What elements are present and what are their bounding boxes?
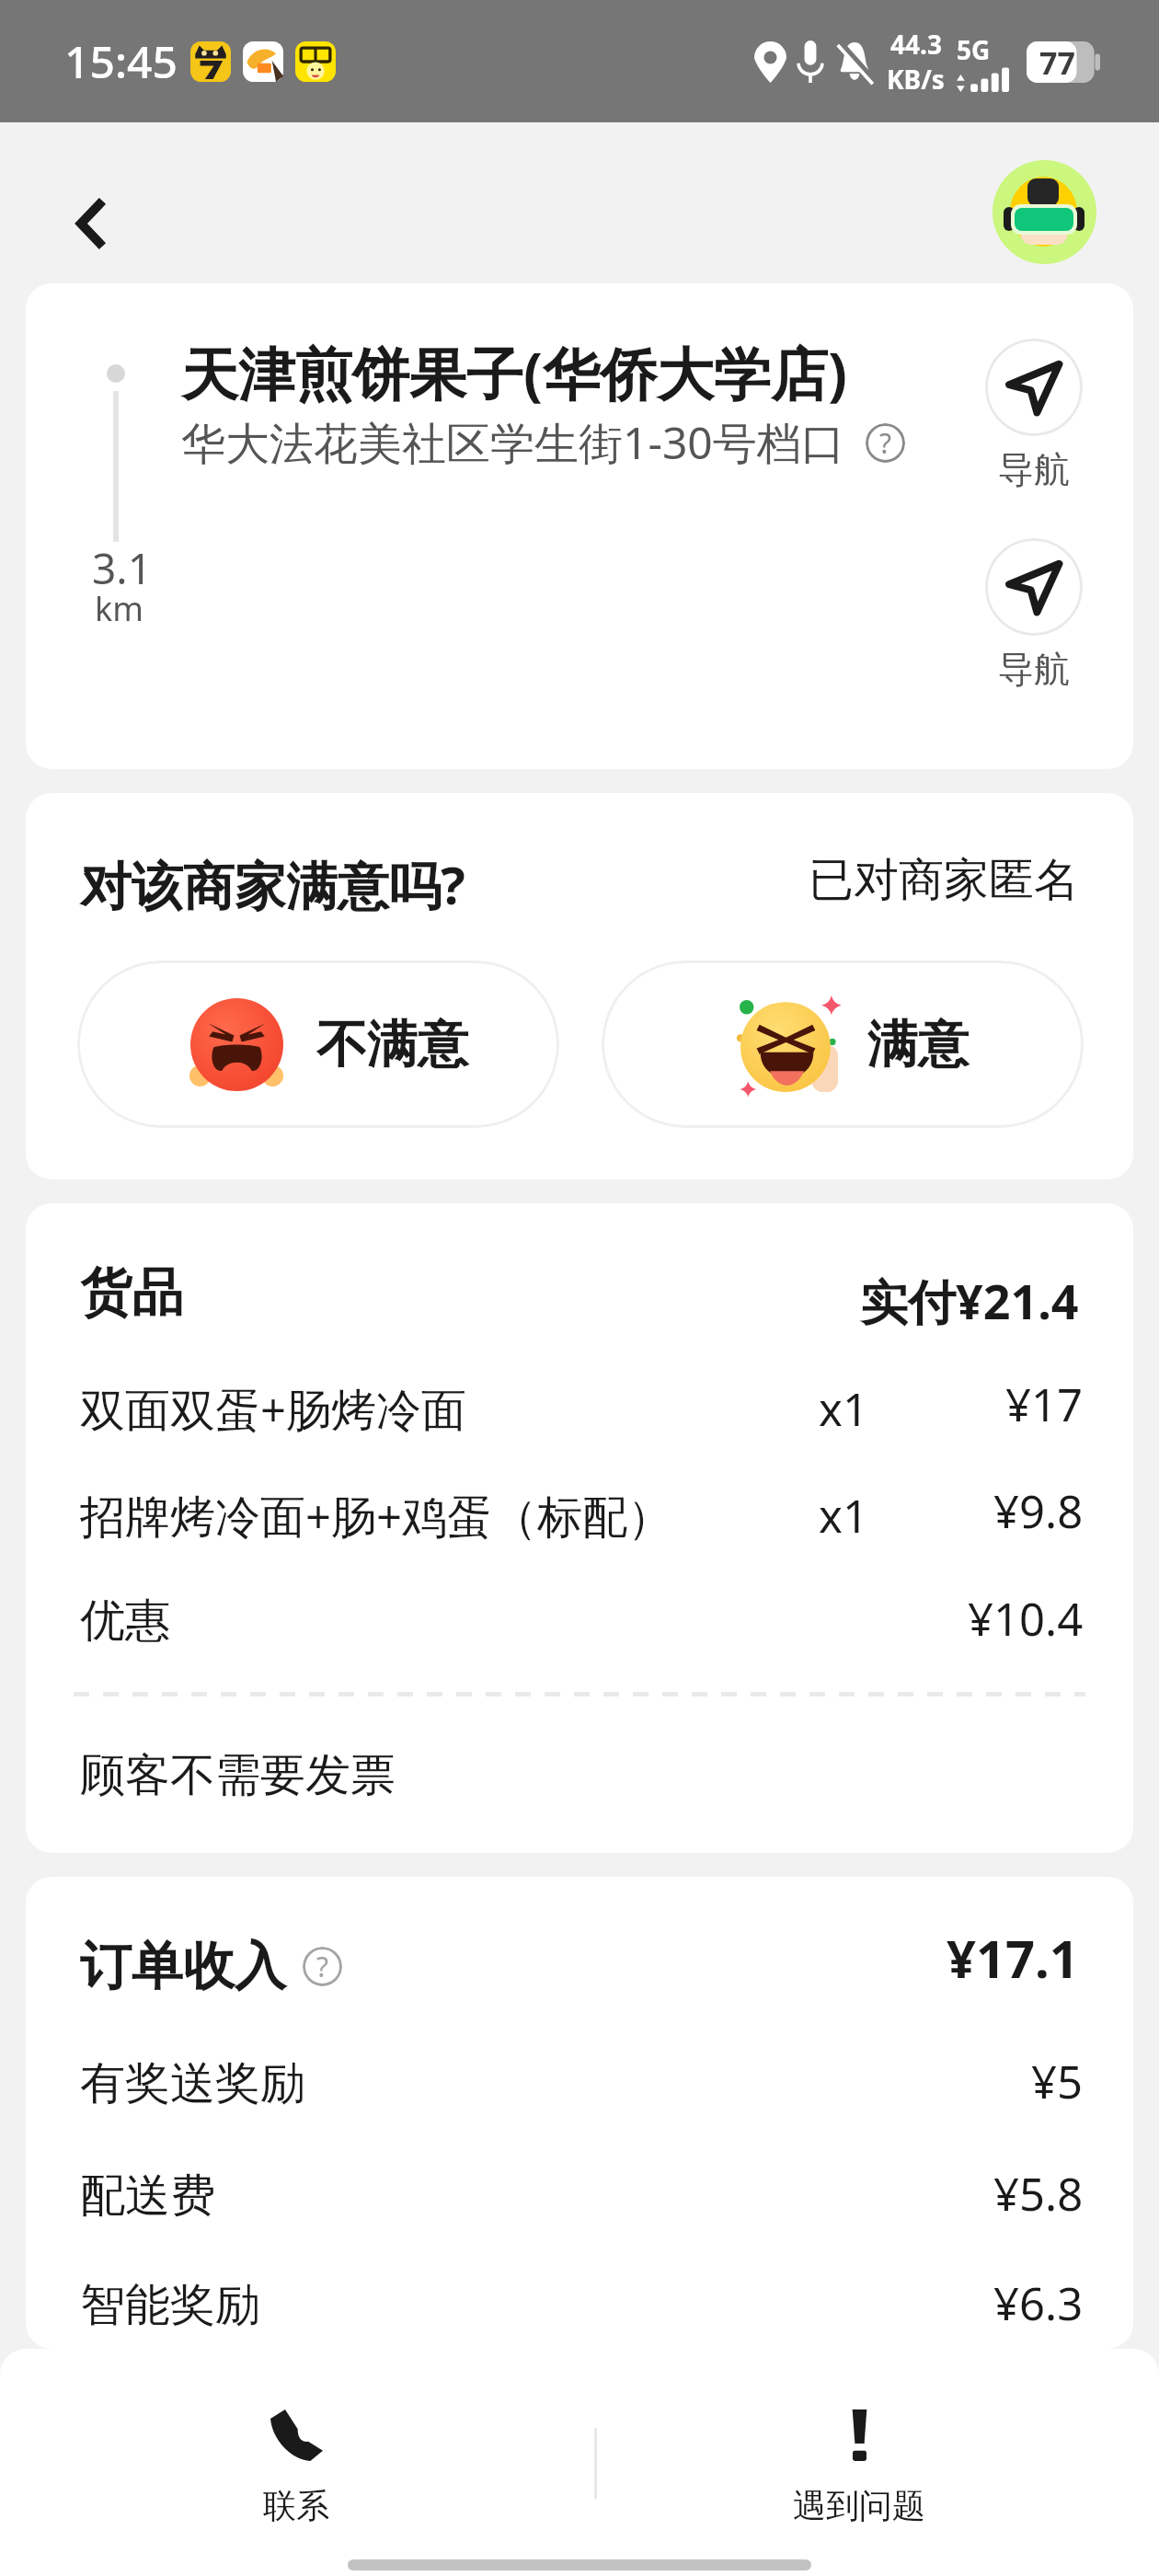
staticText: 导航 bbox=[998, 647, 1070, 692]
staticText: 招牌烤冷面+肠+鸡蛋（标配） bbox=[80, 1485, 673, 1547]
staticText: ? bbox=[316, 1948, 329, 1985]
staticText: ¥5 bbox=[1031, 2051, 1084, 2112]
button[interactable]: 导航 bbox=[985, 339, 1083, 492]
button[interactable]: 联系 bbox=[149, 2349, 443, 2576]
staticText: 不满意 bbox=[316, 1013, 468, 1076]
staticText: 满意 bbox=[867, 1013, 969, 1076]
staticText: 优惠 bbox=[80, 1593, 170, 1650]
staticText: 订单收入 bbox=[80, 1934, 286, 1999]
staticText: ¥10.4 bbox=[968, 1588, 1084, 1650]
button[interactable]: 满意 bbox=[602, 960, 1084, 1128]
staticText: 遇到问题 bbox=[793, 2485, 925, 2526]
staticText: ¥17 bbox=[1005, 1374, 1084, 1435]
button[interactable]: 不满意 bbox=[77, 960, 559, 1128]
button[interactable]: 导航 bbox=[985, 538, 1083, 692]
staticText: 天津煎饼果子(华侨大学店) bbox=[181, 334, 848, 412]
staticText: 3.1 bbox=[92, 539, 152, 597]
staticText: km bbox=[95, 586, 143, 631]
button[interactable]: Profile bbox=[993, 160, 1096, 264]
staticText: 15:45 bbox=[64, 31, 178, 91]
button[interactable]: 已对商家匿名 bbox=[809, 852, 1079, 909]
button[interactable]: 华大法花美社区学生街1-30号档口 bbox=[181, 412, 905, 473]
staticText: 华大法花美社区学生街1-30号档口 bbox=[181, 412, 845, 473]
staticText: 顾客不需要发票 bbox=[80, 1747, 396, 1804]
staticText: ? bbox=[879, 424, 892, 462]
button[interactable]: Back bbox=[76, 200, 104, 247]
staticText: 5G bbox=[957, 32, 991, 67]
staticText: 44.3 bbox=[890, 27, 942, 62]
staticText: 联系 bbox=[263, 2485, 329, 2526]
staticText: 77 bbox=[1039, 41, 1075, 83]
staticText: 配送费 bbox=[80, 2168, 215, 2225]
staticText: 实付¥21.4 bbox=[860, 1268, 1079, 1333]
staticText: 双面双蛋+肠烤冷面 bbox=[80, 1378, 467, 1440]
staticText: 对该商家满意吗? bbox=[80, 849, 465, 919]
staticText: 有奖送奖励 bbox=[80, 2055, 305, 2112]
staticText: x1 bbox=[819, 1378, 868, 1440]
staticText: 导航 bbox=[998, 447, 1070, 492]
button[interactable]: 遇到问题 bbox=[712, 2349, 1006, 2576]
button[interactable]: 订单收入 bbox=[80, 1934, 342, 1999]
staticText: x1 bbox=[819, 1485, 868, 1547]
button[interactable]: 天津煎饼果子(华侨大学店) bbox=[181, 334, 848, 412]
staticText: KB/s bbox=[887, 62, 945, 97]
staticText: ¥5.8 bbox=[993, 2163, 1084, 2225]
staticText: 货品 bbox=[80, 1260, 183, 1326]
staticText: 智能奖励 bbox=[80, 2277, 260, 2334]
staticText: ¥6.3 bbox=[993, 2272, 1084, 2334]
staticText: ¥17.1 bbox=[947, 1923, 1079, 1993]
staticText: ¥9.8 bbox=[993, 1480, 1084, 1542]
